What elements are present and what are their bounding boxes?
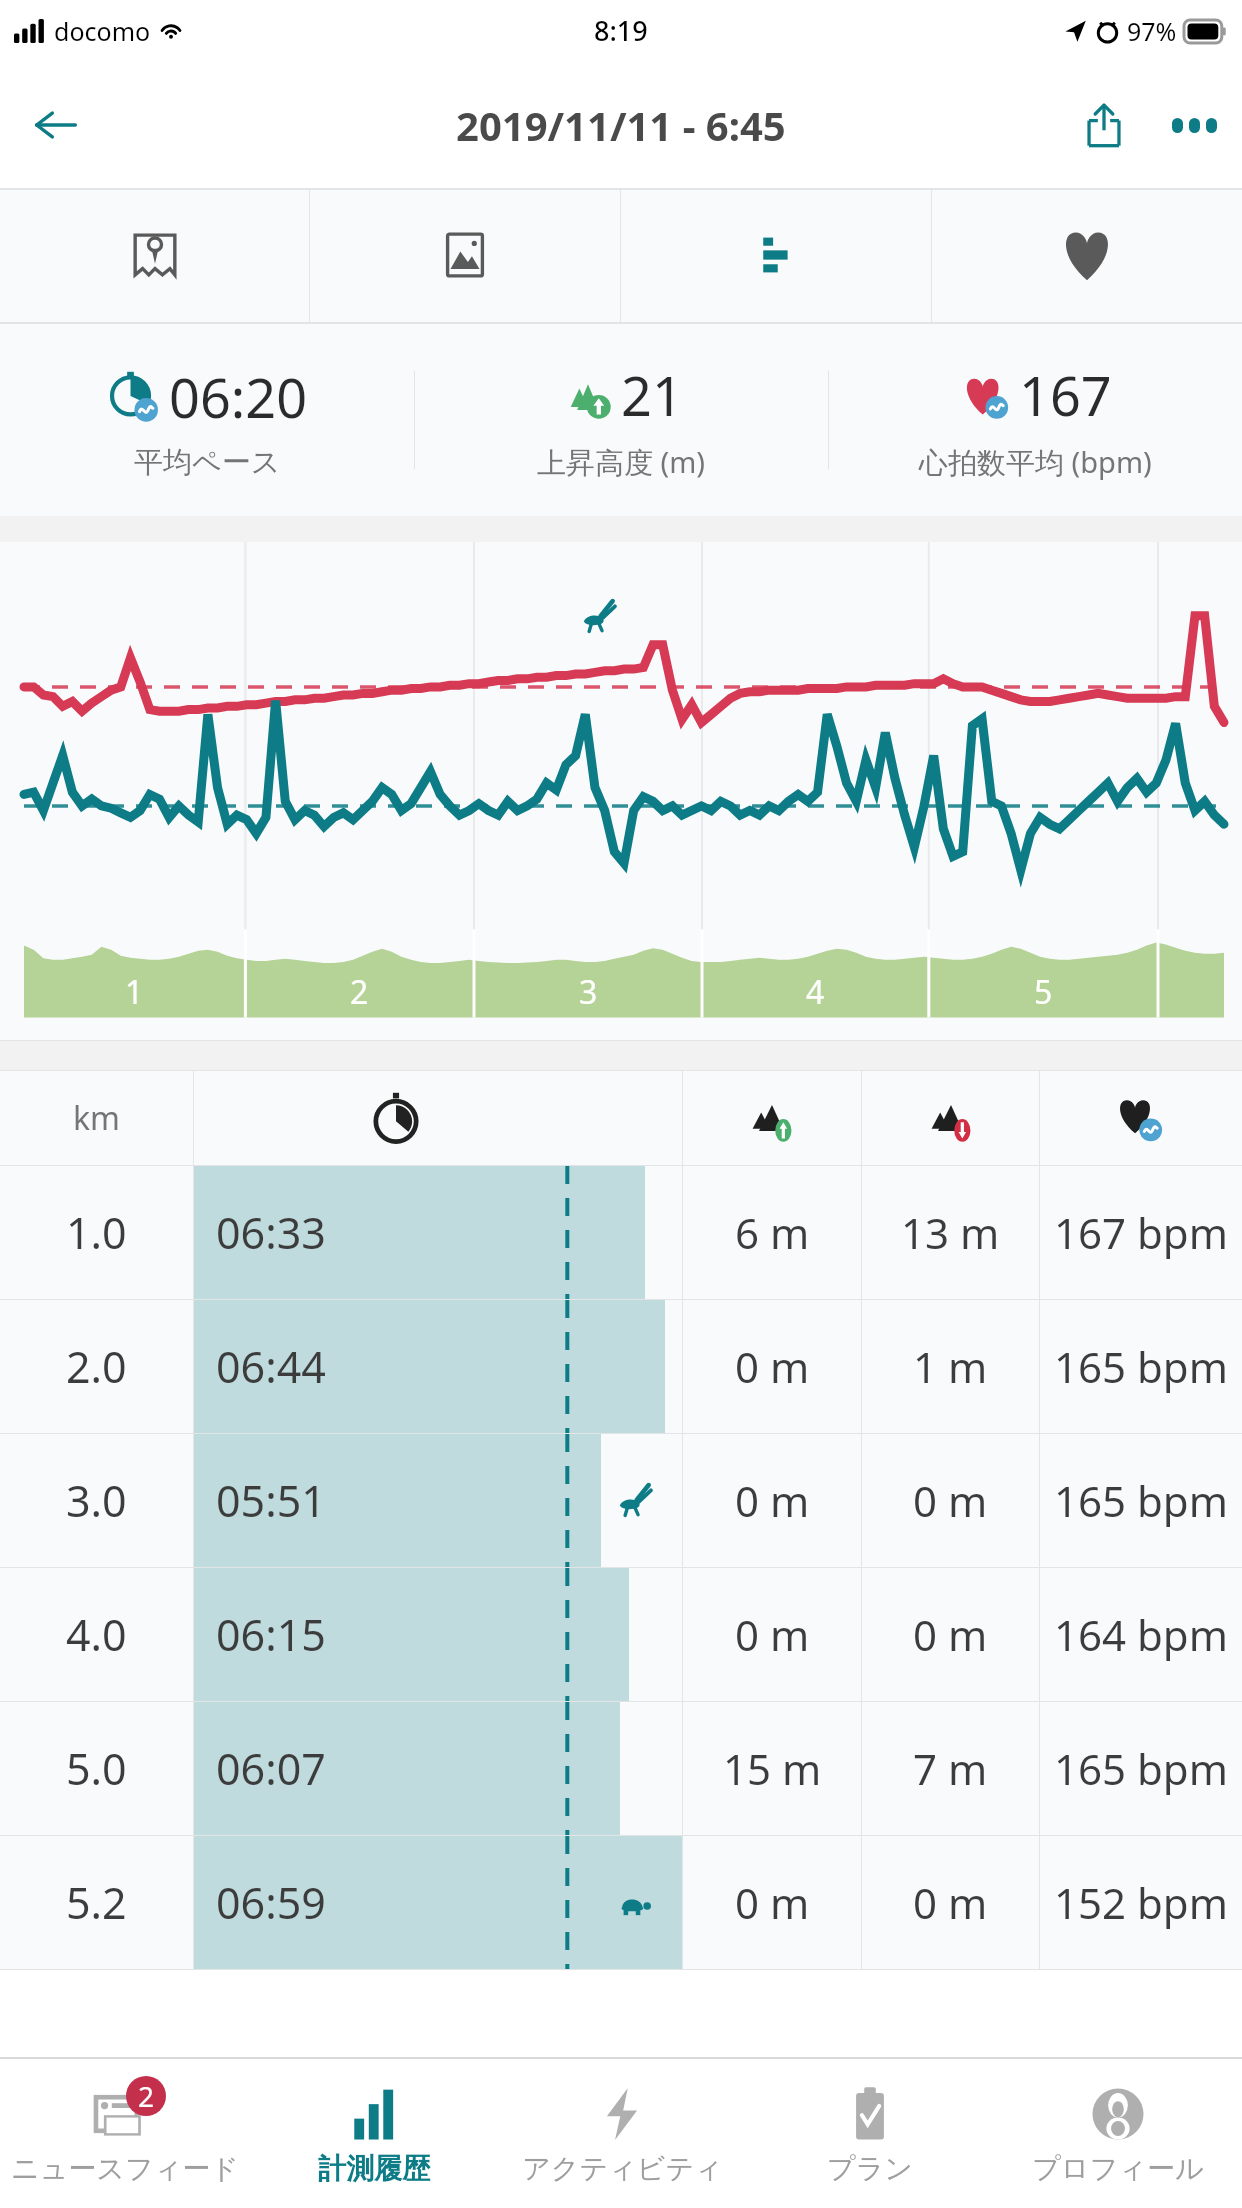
- button[interactable]: 4.0: [0, 1568, 1242, 1701]
- staticText: km: [73, 1096, 121, 1140]
- staticText: 152 bpm: [1054, 1874, 1228, 1931]
- staticText: 165 bpm: [1054, 1338, 1228, 1395]
- staticText: 97%: [1127, 14, 1177, 48]
- staticText: ニュースフィード: [11, 2151, 239, 2186]
- staticText: docomo: [54, 14, 151, 48]
- staticText: 2.0: [66, 1337, 127, 1396]
- button[interactable]: 計測履歴: [249, 2059, 498, 2208]
- staticText: 0 m: [735, 1338, 810, 1395]
- staticText: 06:59: [216, 1873, 326, 1932]
- staticText: 計測履歴: [318, 2151, 430, 2186]
- staticText: プラン: [827, 2151, 913, 2186]
- staticText: 5.2: [66, 1873, 127, 1932]
- staticText: 3: [579, 970, 598, 1014]
- staticText: 上昇高度 (m): [537, 442, 706, 482]
- staticText: 1.0: [66, 1203, 127, 1262]
- staticText: 05:51: [216, 1471, 326, 1530]
- staticText: 2: [138, 2077, 155, 2115]
- staticText: 平均ペース: [134, 444, 281, 481]
- staticText: 7 m: [913, 1740, 988, 1797]
- button[interactable]: プロフィール: [994, 2059, 1242, 2208]
- staticText: 5.0: [66, 1739, 127, 1798]
- staticText: 0 m: [735, 1606, 810, 1663]
- button[interactable]: Back: [18, 87, 94, 163]
- staticText: 21: [621, 358, 683, 432]
- staticText: 3.0: [66, 1471, 127, 1530]
- staticText: 2: [350, 970, 369, 1014]
- button[interactable]: 1: [0, 542, 1242, 1040]
- staticText: 06:15: [216, 1605, 326, 1664]
- button[interactable]: 2: [0, 2059, 249, 2208]
- staticText: 167 bpm: [1054, 1204, 1228, 1261]
- staticText: 5: [1034, 970, 1053, 1014]
- staticText: 15 m: [723, 1740, 822, 1797]
- staticText: 6 m: [735, 1204, 810, 1261]
- staticText: 0 m: [913, 1472, 988, 1529]
- staticText: 8:19: [594, 12, 648, 49]
- button[interactable]: 3.0: [0, 1434, 1242, 1567]
- staticText: 1: [125, 970, 144, 1014]
- staticText: 165 bpm: [1054, 1740, 1228, 1797]
- button[interactable]: 2.0: [0, 1300, 1242, 1433]
- staticText: 心拍数平均 (bpm): [919, 442, 1152, 482]
- button[interactable]: More options: [1146, 77, 1242, 173]
- staticText: 06:20: [169, 360, 308, 434]
- staticText: 1 m: [913, 1338, 988, 1395]
- staticText: 0 m: [735, 1472, 810, 1529]
- button[interactable]: Chart: [621, 188, 931, 322]
- button[interactable]: 5.0: [0, 1702, 1242, 1835]
- staticText: 13 m: [901, 1204, 1000, 1261]
- button[interactable]: Share: [1062, 83, 1146, 167]
- staticText: 4: [806, 970, 825, 1014]
- staticText: 0 m: [735, 1874, 810, 1931]
- button[interactable]: プラン: [746, 2059, 994, 2208]
- staticText: 164 bpm: [1054, 1606, 1228, 1663]
- staticText: 06:33: [216, 1203, 326, 1262]
- staticText: アクティビティ: [522, 2151, 723, 2186]
- button[interactable]: アクティビティ: [498, 2059, 746, 2208]
- staticText: 4.0: [66, 1605, 127, 1664]
- staticText: 2019/11/11 - 6:45: [456, 98, 786, 152]
- button[interactable]: 21: [415, 324, 828, 516]
- button[interactable]: 167: [829, 324, 1242, 516]
- staticText: 06:07: [216, 1739, 326, 1798]
- button[interactable]: 1.0: [0, 1166, 1242, 1299]
- button[interactable]: Heart rate: [932, 188, 1242, 322]
- staticText: 165 bpm: [1054, 1472, 1228, 1529]
- staticText: 0 m: [913, 1606, 988, 1663]
- button[interactable]: 5.2: [0, 1836, 1242, 1969]
- staticText: 0 m: [913, 1874, 988, 1931]
- staticText: 167: [1019, 358, 1112, 432]
- staticText: プロフィール: [1032, 2151, 1204, 2186]
- staticText: 06:44: [216, 1337, 326, 1396]
- button[interactable]: Map: [0, 188, 309, 322]
- button[interactable]: 06:20: [0, 324, 414, 516]
- button[interactable]: Photos: [310, 188, 620, 322]
